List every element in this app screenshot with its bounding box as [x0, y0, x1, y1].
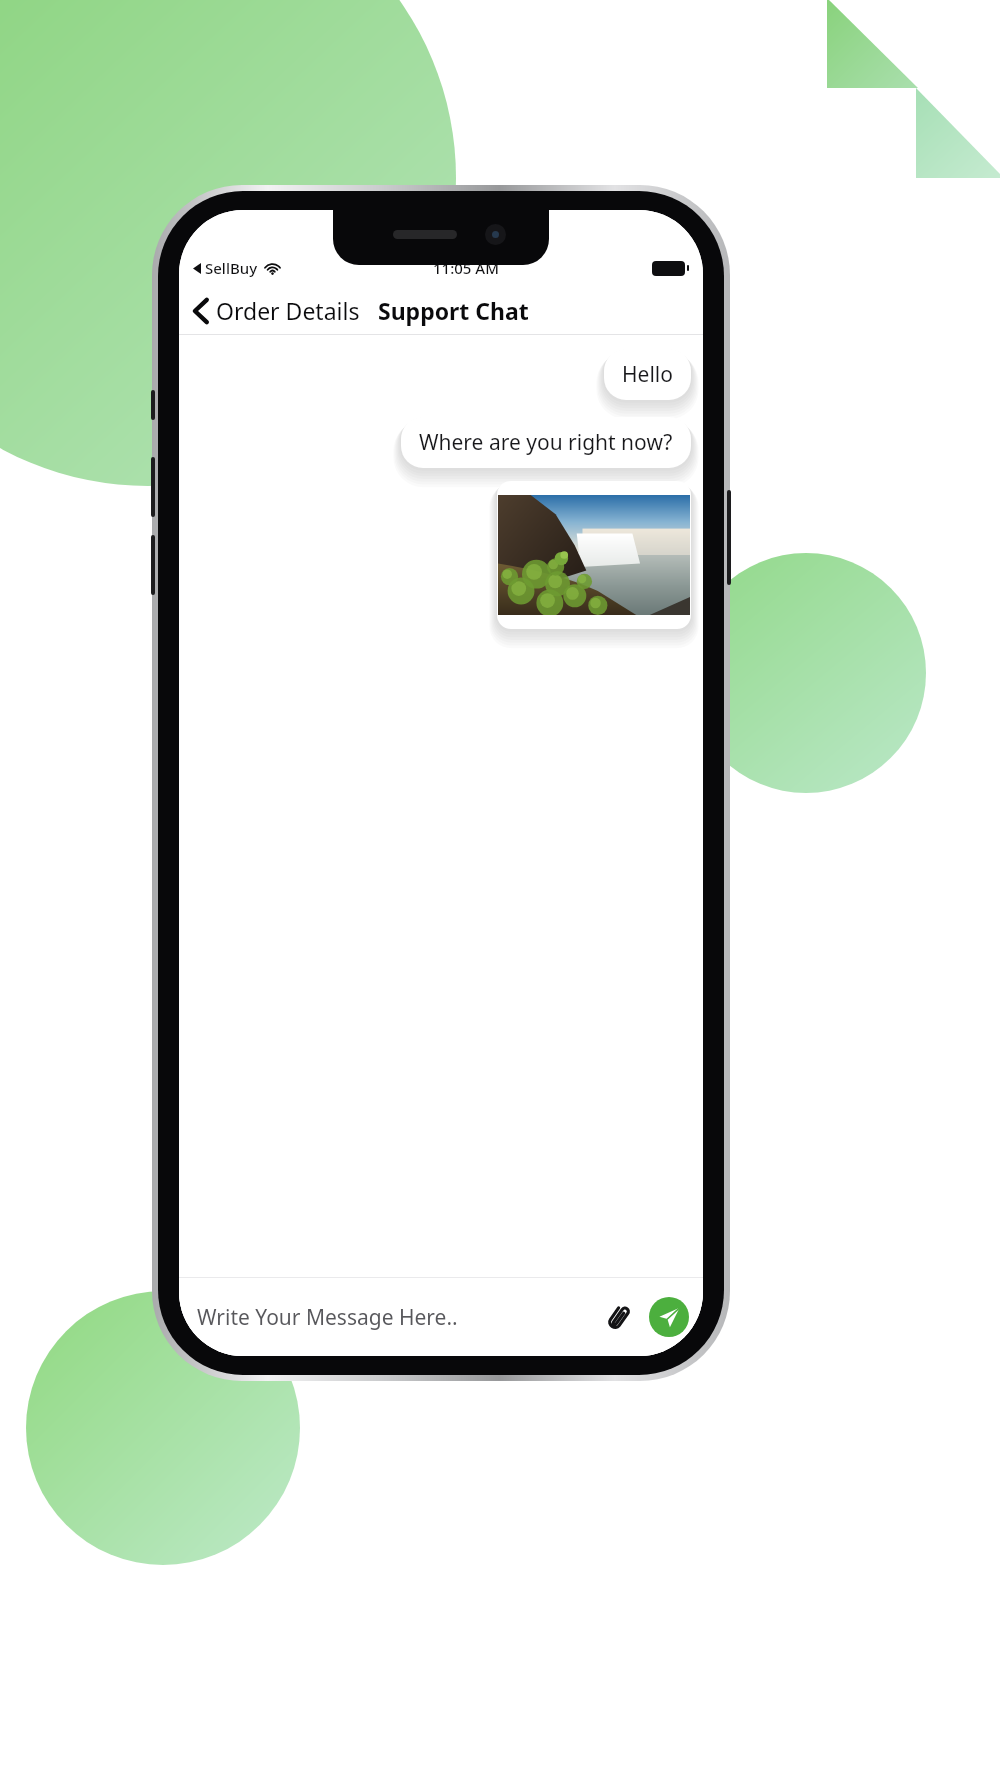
- staticText: Where are you right now?: [419, 428, 673, 457]
- staticText: Support Chat: [378, 295, 529, 326]
- button[interactable]: Where are you right now?: [401, 417, 691, 468]
- button[interactable]: Send: [649, 1297, 689, 1337]
- staticText: 11:05 AM: [433, 258, 499, 278]
- button[interactable]: [497, 481, 691, 629]
- staticText: Write Your Message Here..: [197, 1303, 458, 1332]
- staticText: Hello: [622, 360, 673, 389]
- staticText: SellBuy: [205, 258, 258, 278]
- button[interactable]: Order Details: [189, 289, 364, 332]
- staticText: Order Details: [216, 295, 360, 326]
- button[interactable]: Write Your Message Here..: [197, 1303, 597, 1332]
- button[interactable]: Hello: [604, 349, 691, 400]
- button[interactable]: Attach file: [597, 1296, 639, 1338]
